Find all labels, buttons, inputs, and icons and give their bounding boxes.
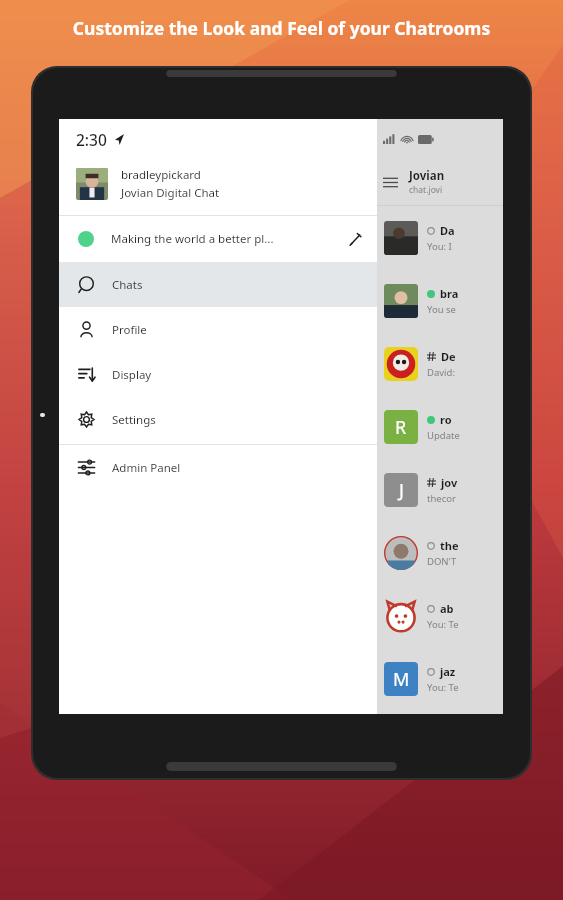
staticText: You: Te (427, 618, 459, 631)
staticText: Chats (112, 277, 143, 293)
button[interactable]: the (377, 521, 503, 584)
staticText: bra (440, 286, 459, 301)
staticText: 2:30 (76, 129, 107, 150)
staticText: ro (440, 412, 452, 427)
staticText: Jovian Digital Chat (121, 185, 220, 201)
staticText: jaz (440, 664, 456, 679)
button[interactable]: bradleypickard (59, 159, 377, 215)
staticText: Making the world a better pl... (111, 231, 348, 247)
staticText: Jovian (409, 168, 448, 184)
staticText: David: (427, 366, 455, 379)
button[interactable]: Settings (59, 397, 377, 442)
staticText: thecor (427, 492, 456, 505)
other: Menu (383, 175, 398, 190)
staticText: the (440, 538, 459, 553)
staticText: Customize the Look and Feel of your Chat… (0, 16, 563, 40)
staticText: Admin Panel (112, 460, 181, 476)
button[interactable]: Admin Panel (59, 445, 377, 490)
button[interactable]: De (377, 332, 503, 395)
button[interactable]: Making the world a better pl... (59, 216, 377, 262)
staticText: R (395, 415, 407, 440)
staticText: jov (441, 475, 458, 490)
button[interactable]: Da (377, 206, 503, 269)
staticText: bradleypickard (121, 167, 201, 183)
staticText: You: I (427, 240, 452, 253)
staticText: You: Te (427, 681, 459, 694)
button[interactable]: Profile (59, 307, 377, 352)
staticText: Update (427, 429, 460, 442)
staticText: M (393, 667, 410, 692)
button[interactable]: Chats (59, 262, 377, 307)
staticText: ab (440, 601, 454, 616)
staticText: De (441, 349, 456, 364)
staticText: Settings (112, 412, 156, 428)
staticText: You se (427, 303, 456, 316)
button[interactable]: J (377, 458, 503, 521)
button[interactable]: ab (377, 584, 503, 647)
button[interactable]: M (377, 647, 503, 710)
staticText: Profile (112, 322, 147, 338)
staticText: Da (440, 223, 455, 238)
button[interactable]: bra (377, 269, 503, 332)
staticText: Display (112, 367, 152, 383)
button[interactable]: Display (59, 352, 377, 397)
staticText: DON'T (427, 555, 457, 568)
other: Edit status (348, 232, 363, 247)
staticText: J (399, 478, 404, 503)
staticText: chat.jovi (409, 184, 443, 196)
button[interactable]: R (377, 395, 503, 458)
